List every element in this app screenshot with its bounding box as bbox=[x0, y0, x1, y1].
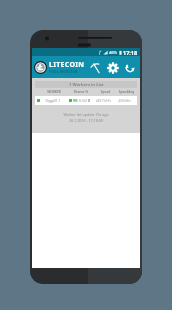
staticText: 429.7 kH/s bbox=[93, 99, 114, 103]
staticText: LITECOIN bbox=[49, 60, 85, 70]
staticText: Worker list update 15s ago bbox=[35, 112, 137, 117]
staticText: 0.33 bbox=[79, 98, 86, 103]
staticText: Shares % bbox=[67, 90, 95, 94]
button[interactable]: Refresh bbox=[121, 59, 138, 76]
staticText: / bbox=[77, 98, 79, 103]
staticText: 46% bbox=[109, 50, 118, 55]
staticText: WORKER bbox=[41, 90, 67, 94]
staticText: 1 Workers in List bbox=[69, 82, 104, 88]
button[interactable]: LITECOIN bbox=[34, 60, 85, 74]
staticText: 17:18 bbox=[123, 49, 138, 56]
staticText: 99 bbox=[73, 98, 77, 103]
staticText: SpeedAvg bbox=[116, 90, 137, 94]
staticText: 0 bbox=[88, 98, 90, 103]
staticText: 430 kH/s bbox=[114, 99, 135, 103]
staticText: POOL MONITOR bbox=[49, 70, 78, 74]
button[interactable]: Diggi01.1 bbox=[35, 96, 137, 105]
button[interactable]: Miners bbox=[87, 59, 104, 76]
staticText: Diggi01.1 bbox=[41, 98, 65, 103]
button[interactable]: Settings bbox=[104, 59, 121, 76]
staticText: 26.1.2016 - 17:18:09 bbox=[35, 118, 137, 123]
staticText: / bbox=[86, 98, 88, 103]
staticText: Speed bbox=[95, 90, 116, 94]
